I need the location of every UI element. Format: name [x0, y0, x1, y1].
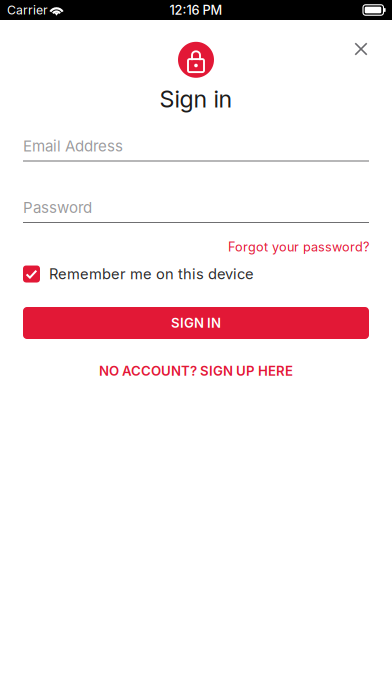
staticText: Forgot your password?	[228, 239, 369, 255]
button[interactable]: Email Address	[23, 131, 369, 161]
staticText: Remember me on this device	[49, 265, 254, 283]
button[interactable]: Close	[339, 27, 383, 71]
button[interactable]: SIGN IN	[23, 307, 369, 339]
staticText: Password	[23, 198, 92, 217]
staticText: Carrier	[7, 3, 48, 17]
staticText: Email Address	[23, 137, 123, 155]
staticText: Sign in	[159, 85, 232, 113]
button[interactable]: Forgot your password?	[23, 237, 369, 257]
button[interactable]: Remember me on this device	[23, 263, 369, 285]
staticText: 12:16 PM	[169, 2, 222, 18]
button[interactable]: NO ACCOUNT? SIGN UP HERE	[23, 360, 369, 382]
staticText: NO ACCOUNT? SIGN UP HERE	[99, 363, 293, 379]
staticText: SIGN IN	[171, 315, 221, 331]
button[interactable]: Password	[23, 193, 369, 223]
